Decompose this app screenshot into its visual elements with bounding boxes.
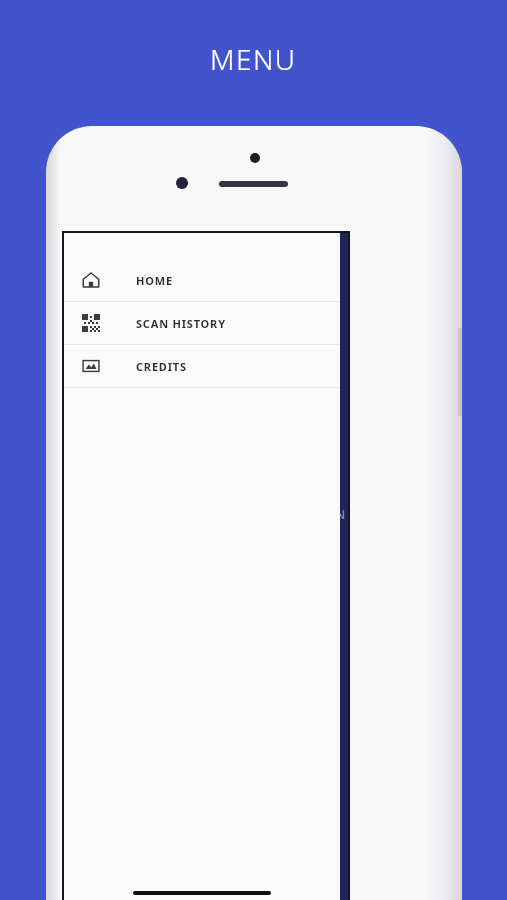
staticText: HOME	[136, 273, 173, 288]
staticText: CREDITS	[136, 359, 187, 374]
staticText: NAVIGATION	[250, 505, 347, 523]
other: Credits	[82, 357, 100, 375]
other: Scan history	[82, 314, 100, 332]
other: Home	[82, 271, 100, 289]
staticText: SCAN HISTORY	[136, 316, 226, 331]
staticText: MENU	[210, 40, 297, 78]
button[interactable]: Scan history	[64, 302, 340, 344]
button[interactable]: Home	[64, 259, 340, 301]
button[interactable]: Credits	[64, 345, 340, 387]
